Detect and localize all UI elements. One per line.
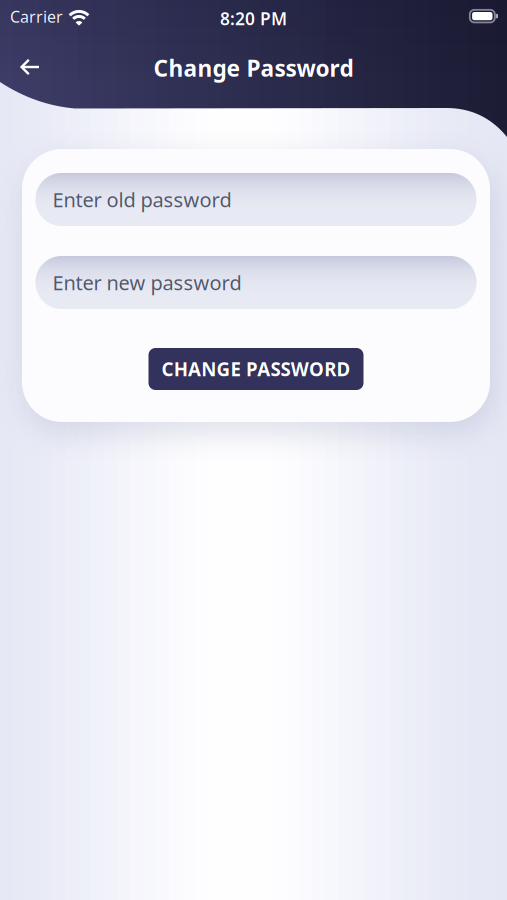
button[interactable]: Enter new password (35, 256, 476, 309)
button[interactable]: Back (0, 34, 56, 89)
button[interactable]: Enter old password (35, 173, 476, 226)
staticText: CHANGE PASSWORD (162, 357, 350, 381)
button[interactable]: CHANGE PASSWORD (148, 348, 363, 390)
staticText: Carrier (10, 6, 63, 27)
staticText: 8:20 PM (220, 7, 287, 30)
staticText: Change Password (153, 53, 353, 83)
staticText: Enter old password (52, 186, 231, 213)
staticText: Enter new password (52, 269, 241, 296)
